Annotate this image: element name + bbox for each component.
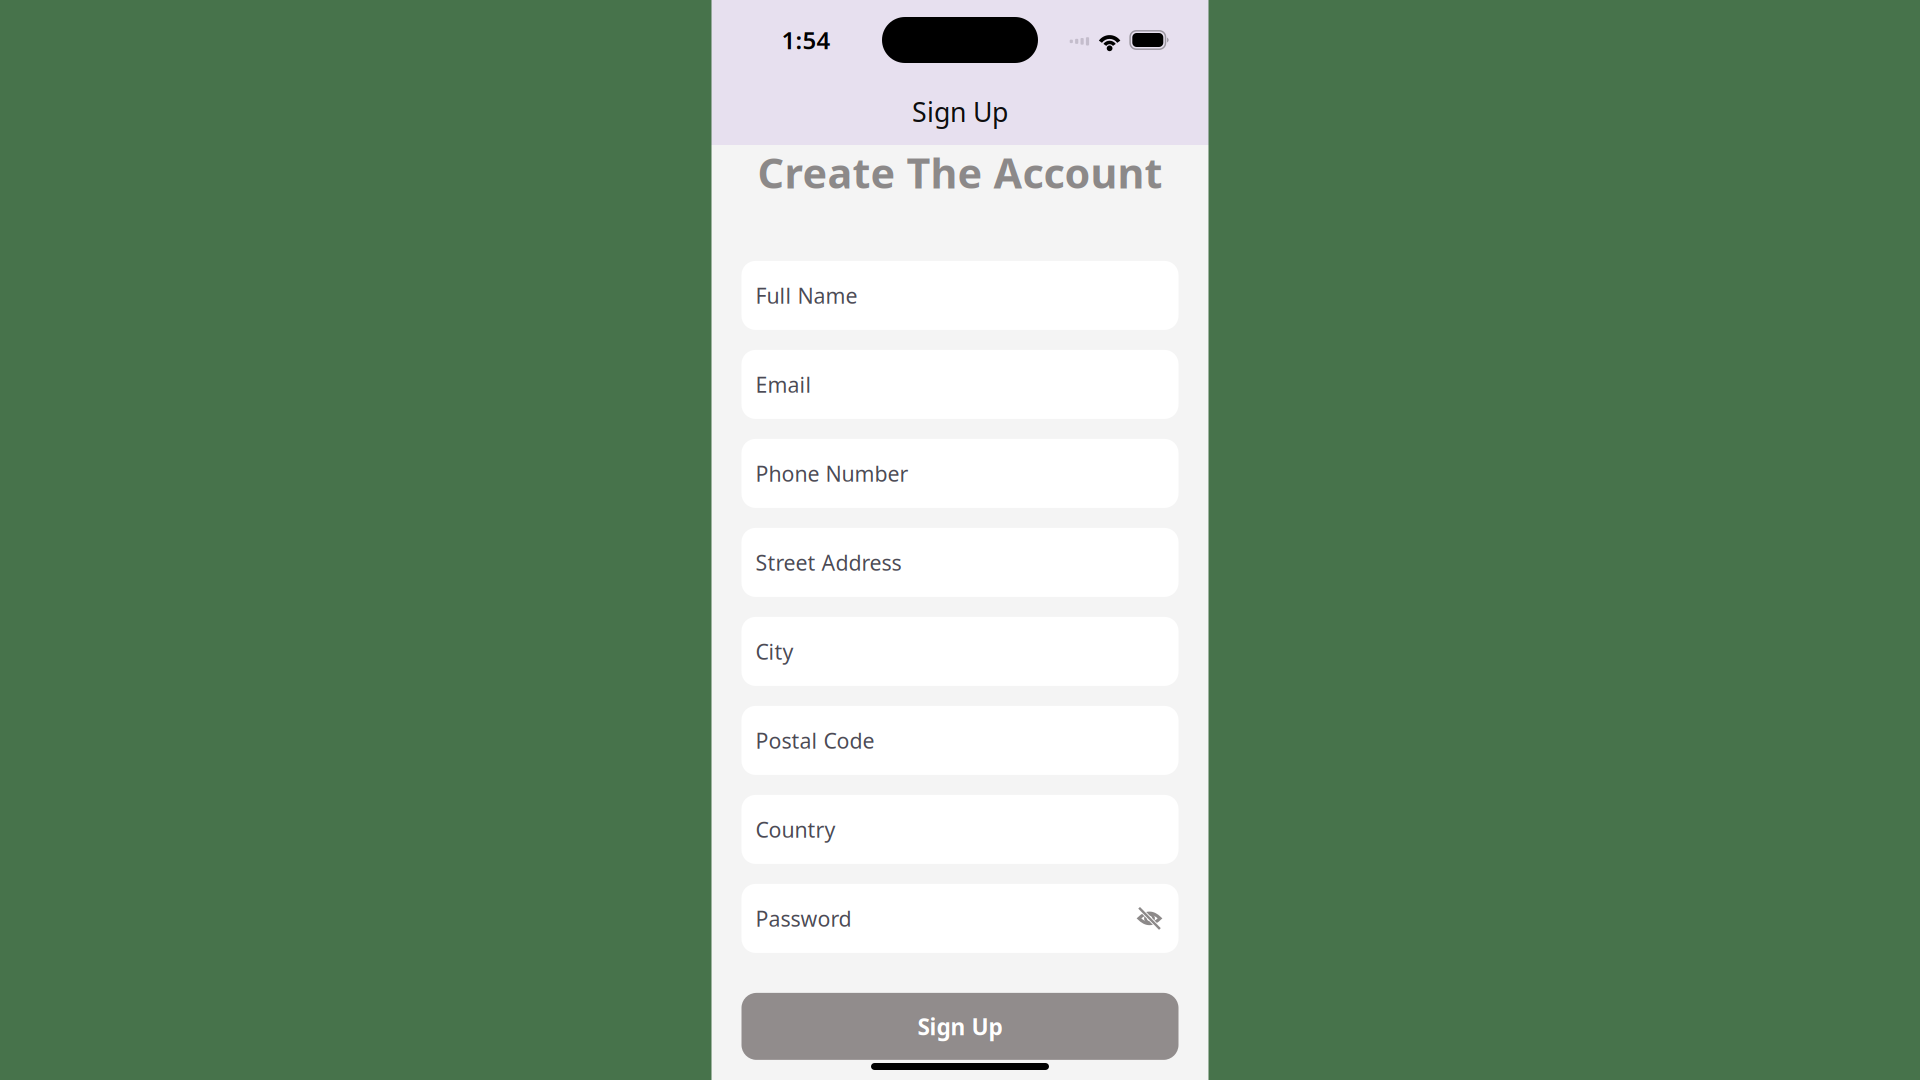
staticText: Sign Up <box>917 1011 1002 1041</box>
button[interactable]: Full Name <box>741 261 1178 330</box>
staticText: Postal Code <box>755 726 874 754</box>
button[interactable]: Password <box>741 884 1178 953</box>
staticText: Sign Up <box>912 94 1008 129</box>
button[interactable]: Show password <box>1127 884 1171 953</box>
button[interactable]: Street Address <box>741 528 1178 597</box>
staticText: 1:54 <box>781 24 830 56</box>
button[interactable]: Email <box>741 350 1178 419</box>
button[interactable]: Postal Code <box>741 706 1178 775</box>
button[interactable]: Sign Up <box>741 993 1178 1060</box>
staticText: City <box>755 637 793 665</box>
staticText: Password <box>755 904 851 932</box>
staticText: Phone Number <box>755 459 908 487</box>
staticText: Country <box>755 815 835 843</box>
staticText: Email <box>755 370 811 398</box>
staticText: Street Address <box>755 548 901 576</box>
button[interactable]: City <box>741 617 1178 686</box>
button[interactable]: Country <box>741 795 1178 864</box>
staticText: Create The Account <box>757 145 1162 200</box>
staticText: Full Name <box>755 281 857 309</box>
button[interactable]: Phone Number <box>741 439 1178 508</box>
